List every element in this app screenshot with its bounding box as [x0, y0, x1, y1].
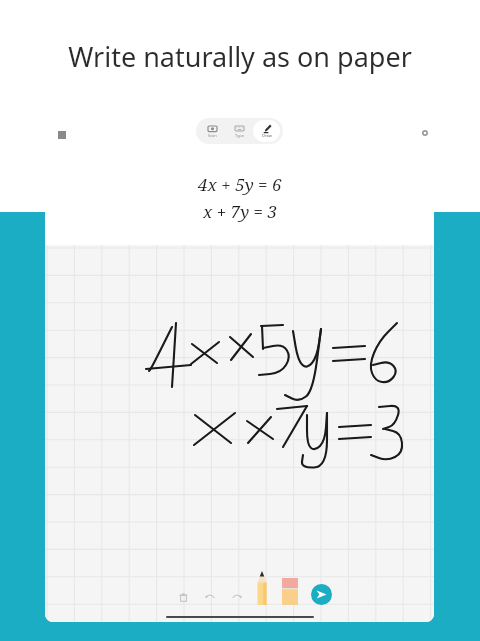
staticText: 4x + 5y = 6 [198, 173, 282, 196]
button[interactable]: Pen [254, 571, 270, 605]
button[interactable]: Type [226, 120, 253, 142]
button[interactable]: Redo [229, 589, 245, 605]
button[interactable]: Send [311, 584, 332, 605]
button[interactable]: Settings [416, 124, 434, 142]
staticText: Write naturally as on paper [0, 38, 480, 75]
staticText: Scan [208, 133, 217, 138]
button[interactable]: Menu [52, 125, 72, 145]
staticText: x + 7y = 3 [203, 200, 277, 223]
button[interactable]: Scan [199, 120, 226, 142]
staticText: Type [235, 133, 244, 138]
button[interactable]: Undo [202, 589, 218, 605]
button[interactable]: Delete [175, 589, 191, 605]
button[interactable]: Draw [253, 120, 280, 142]
button[interactable]: Eraser [282, 578, 298, 605]
staticText: Draw [262, 133, 272, 138]
